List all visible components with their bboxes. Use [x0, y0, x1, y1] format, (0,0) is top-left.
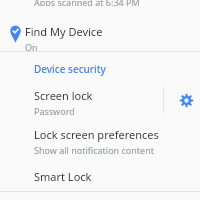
staticText: Device security [34, 62, 106, 76]
staticText: Find My Device [25, 24, 103, 39]
staticText: Password [34, 105, 75, 117]
staticText: Apps scanned at 6:34 PM [34, 0, 140, 6]
staticText: Smart Lock [34, 169, 92, 184]
button[interactable]: Lock screen preferences [0, 127, 200, 159]
staticText: On [25, 41, 38, 53]
staticText: Show all notification content [34, 144, 154, 156]
button[interactable]: Screen lock settings [172, 86, 200, 114]
button[interactable]: Screen lock [0, 86, 160, 118]
other: Find My Device location [9, 25, 22, 43]
button[interactable]: Smart Lock [0, 169, 200, 191]
staticText: Lock screen preferences [34, 127, 159, 142]
staticText: Screen lock [34, 88, 93, 103]
button[interactable]: Apps scanned at 6:34 PM [0, 0, 200, 10]
button[interactable]: Find My Device location [0, 18, 200, 48]
